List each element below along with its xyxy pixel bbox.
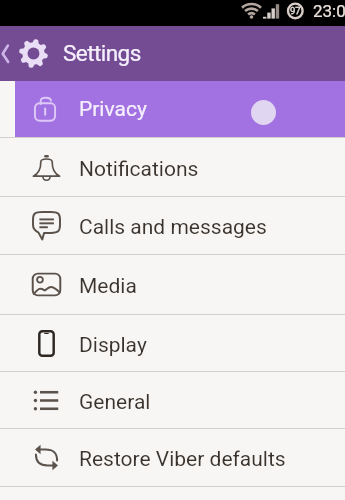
staticText: Media: [79, 274, 137, 299]
staticText: Settings: [63, 40, 141, 66]
staticText: Display: [79, 333, 147, 358]
button[interactable]: Display: [0, 315, 345, 371]
button[interactable]: Calls and messages: [0, 197, 345, 254]
staticText: Privacy: [79, 97, 147, 122]
staticText: General: [79, 390, 151, 415]
button[interactable]: Privacy: [15, 81, 345, 137]
staticText: 97: [290, 5, 301, 16]
button[interactable]: Notifications: [0, 138, 345, 196]
staticText: Calls and messages: [79, 215, 267, 240]
button[interactable]: Media: [0, 255, 345, 314]
button[interactable]: Restore Viber defaults: [0, 429, 345, 486]
staticText: 23:0: [313, 1, 345, 21]
button[interactable]: General: [0, 372, 345, 428]
staticText: Restore Viber defaults: [79, 447, 286, 472]
button[interactable]: Back: [0, 26, 17, 81]
staticText: Notifications: [79, 157, 199, 182]
